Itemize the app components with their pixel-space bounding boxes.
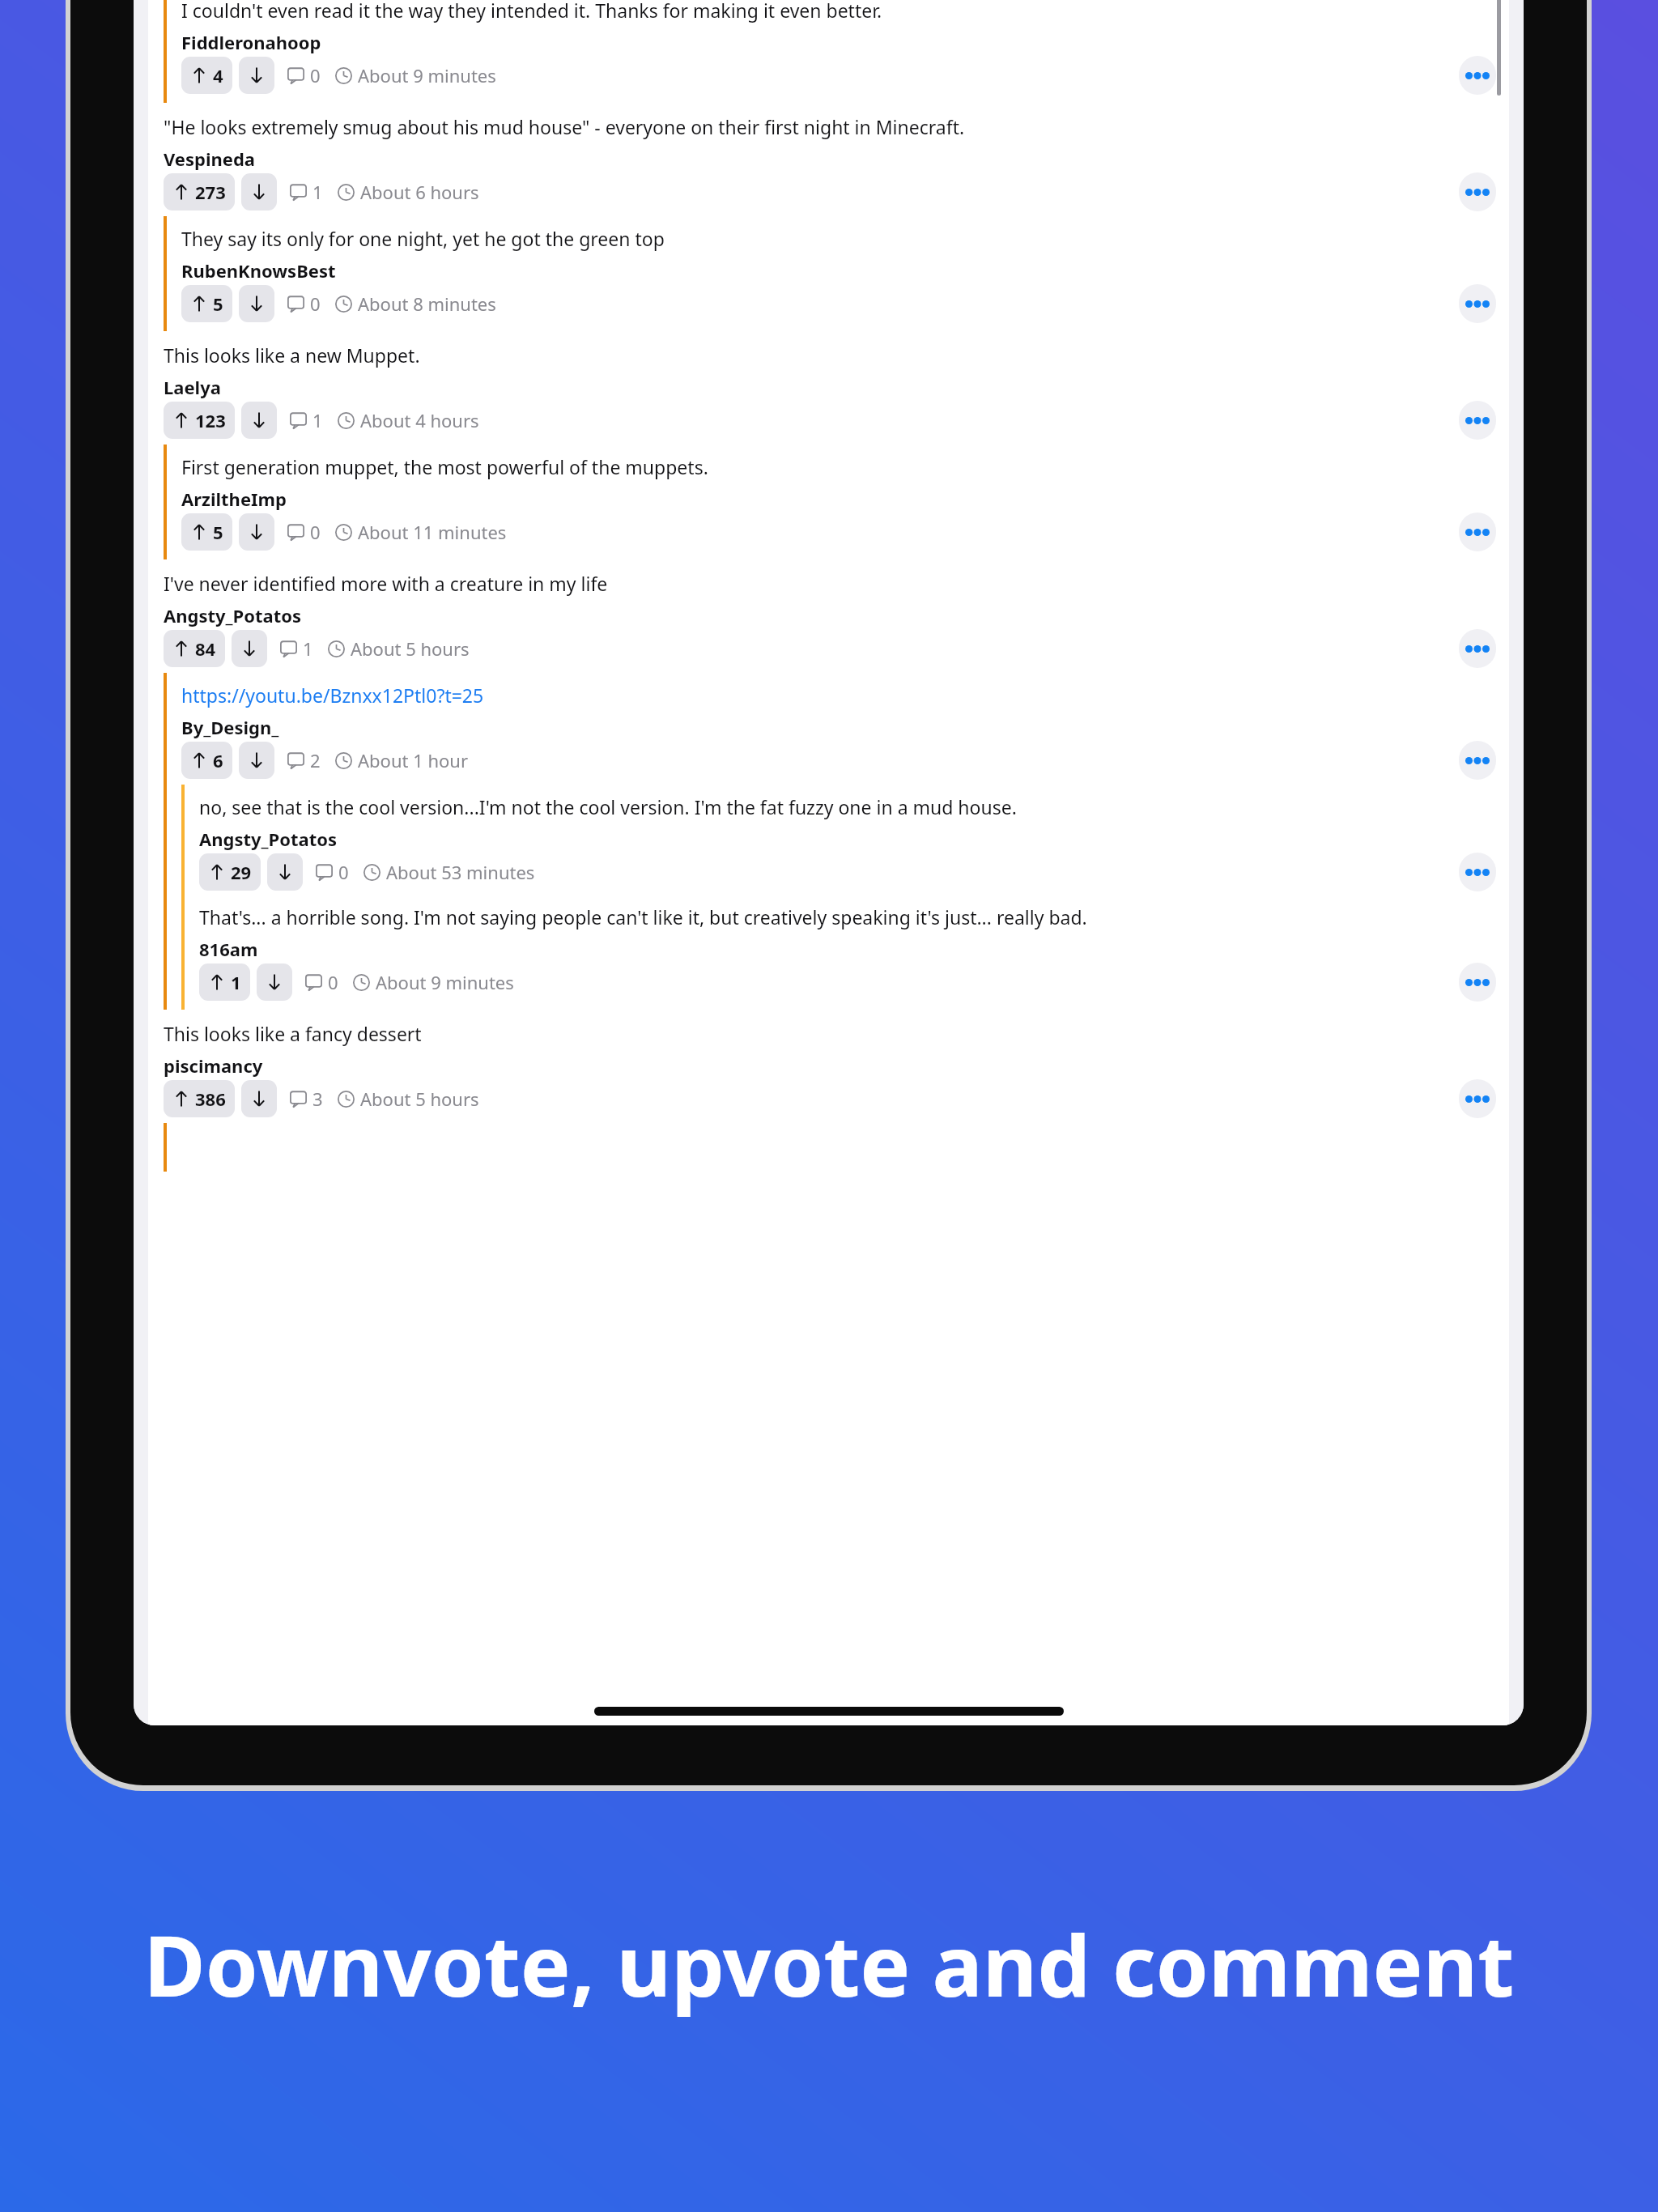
button[interactable]: 6 (181, 742, 232, 779)
staticText: 0 (310, 291, 321, 316)
button[interactable]: Downvote (241, 1080, 277, 1117)
staticText: 273 (195, 180, 226, 204)
button[interactable]: 386 (164, 1080, 235, 1117)
staticText: 123 (195, 408, 226, 432)
staticText: About 6 hours (360, 180, 479, 204)
staticText: 0 (310, 520, 321, 544)
staticText: They say its only for one night, yet he … (181, 226, 665, 251)
staticText: About 8 minutes (358, 291, 496, 316)
button[interactable]: More options (1459, 963, 1496, 1002)
staticText: About 11 minutes (358, 520, 507, 544)
button[interactable]: 123 (164, 402, 235, 439)
button[interactable]: 0 (287, 291, 321, 316)
button[interactable]: 5 (181, 285, 232, 322)
staticText: Vespineda (164, 147, 256, 171)
button[interactable]: More options (1459, 56, 1496, 95)
button[interactable]: More options (1459, 513, 1496, 551)
button[interactable]: 1 (280, 636, 313, 661)
staticText: This looks like a fancy dessert (164, 1021, 422, 1046)
staticText: Angsty_Potatos (164, 603, 302, 627)
staticText: By_Design_ (181, 715, 279, 739)
button[interactable]: Downvote (241, 173, 277, 211)
staticText: RubenKnowsBest (181, 258, 336, 283)
staticText: About 5 hours (360, 1087, 479, 1111)
staticText: Angsty_Potatos (199, 827, 338, 851)
staticText: Laelya (164, 375, 221, 399)
button[interactable]: 0 (305, 970, 338, 994)
staticText: About 1 hour (358, 748, 469, 772)
button[interactable]: More options (1459, 1079, 1496, 1118)
staticText: About 5 hours (351, 636, 470, 661)
staticText: piscimancy (164, 1053, 263, 1078)
button[interactable]: Downvote (267, 853, 303, 891)
staticText: "He looks extremely smug about his mud h… (164, 114, 965, 139)
staticText: 1 (231, 970, 241, 994)
staticText: 0 (310, 63, 321, 87)
button[interactable]: More options (1459, 284, 1496, 323)
button[interactable]: 3 (290, 1087, 323, 1111)
button[interactable]: Downvote (257, 963, 292, 1001)
staticText: This looks like a new Muppet. (164, 342, 420, 368)
staticText: About 53 minutes (386, 860, 535, 884)
staticText: 816am (199, 937, 258, 961)
button[interactable]: 29 (199, 853, 261, 891)
button[interactable]: More options (1459, 741, 1496, 780)
staticText: https://youtu.be/Bznxx12Ptl0?t=25 (181, 683, 484, 708)
staticText: About 9 minutes (358, 63, 496, 87)
staticText: 29 (231, 860, 252, 884)
staticText: 0 (338, 860, 349, 884)
button[interactable]: Downvote (232, 630, 267, 667)
staticText: 386 (195, 1087, 226, 1111)
staticText: About 4 hours (360, 408, 479, 432)
staticText: About 9 minutes (376, 970, 514, 994)
button[interactable]: 1 (199, 963, 250, 1001)
staticText: 1 (303, 636, 313, 661)
button[interactable]: Downvote (239, 285, 274, 322)
button[interactable]: More options (1459, 853, 1496, 891)
staticText: 3 (312, 1087, 323, 1111)
button[interactable]: More options (1459, 401, 1496, 440)
staticText: I couldn't even read it the way they int… (181, 0, 882, 23)
staticText: Fiddleronahoop (181, 30, 321, 54)
button[interactable]: More options (1459, 172, 1496, 211)
button[interactable]: More options (1459, 629, 1496, 668)
button[interactable]: Downvote (239, 513, 274, 551)
button[interactable]: 1 (290, 408, 323, 432)
staticText: no, see that is the cool version...I'm n… (199, 794, 1017, 819)
staticText: 0 (328, 970, 338, 994)
button[interactable]: 2 (287, 748, 321, 772)
button[interactable]: 0 (316, 860, 349, 884)
staticText: First generation muppet, the most powerf… (181, 454, 708, 479)
staticText: That's... a horrible song. I'm not sayin… (199, 904, 1087, 929)
button[interactable]: 4 (181, 57, 232, 94)
button[interactable]: 273 (164, 173, 235, 211)
button[interactable]: 0 (287, 520, 321, 544)
staticText: ArziltheImp (181, 487, 287, 511)
button[interactable]: Downvote (239, 742, 274, 779)
staticText: 2 (310, 748, 321, 772)
staticText: I've never identified more with a creatu… (164, 571, 608, 596)
staticText: 1 (312, 180, 323, 204)
button[interactable]: 84 (164, 630, 225, 667)
button[interactable]: 5 (181, 513, 232, 551)
staticText: 5 (213, 291, 223, 316)
staticText: 1 (312, 408, 323, 432)
button[interactable]: 1 (290, 180, 323, 204)
staticText: 5 (213, 520, 223, 544)
button[interactable]: Downvote (241, 402, 277, 439)
staticText: 4 (213, 63, 223, 87)
button[interactable]: Downvote (239, 57, 274, 94)
staticText: 84 (195, 636, 216, 661)
staticText: 6 (213, 748, 223, 772)
button[interactable]: 0 (287, 63, 321, 87)
staticText: Downvote, upvote and comment (49, 1907, 1609, 2022)
